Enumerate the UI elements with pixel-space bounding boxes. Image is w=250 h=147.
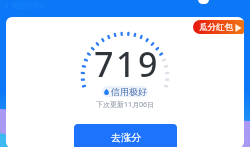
staticText: 719 xyxy=(94,41,161,87)
button[interactable]: 瓜分红包 xyxy=(193,20,244,34)
button[interactable]: 信用极好 xyxy=(102,86,148,97)
staticText: 下次更新11月06日 xyxy=(96,100,155,110)
staticText: 信用极好 xyxy=(111,86,147,97)
staticText: 瓜分红包 xyxy=(199,22,233,33)
staticText: 去涨分 xyxy=(111,131,141,144)
button[interactable]: 去涨分 xyxy=(74,124,177,147)
